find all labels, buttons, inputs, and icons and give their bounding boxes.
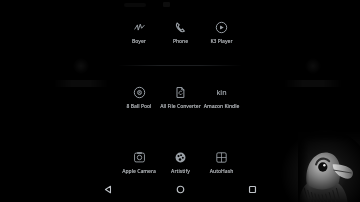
button[interactable]: Phone: [160, 19, 201, 47]
staticText: kindle: [215, 88, 228, 98]
button[interactable]: All File Converter: [160, 84, 201, 112]
button[interactable]: Boyer: [118, 19, 160, 47]
staticText: Phone: [160, 38, 201, 45]
button[interactable]: Back: [85, 176, 131, 202]
button[interactable]: kindle: [201, 84, 242, 112]
staticText: 8 Ball Pool: [118, 103, 160, 110]
staticText: Boyer: [118, 38, 160, 45]
staticText: Artistify: [160, 168, 201, 175]
button[interactable]: K3 Player: [201, 19, 242, 47]
button[interactable]: AutoHash: [201, 149, 242, 177]
staticText: K3 Player: [201, 38, 242, 45]
button[interactable]: Home: [157, 176, 203, 202]
button[interactable]: Artistify: [160, 149, 201, 177]
button[interactable]: 8 Ball Pool: [118, 84, 160, 112]
staticText: Amazon Kindle: [201, 103, 242, 110]
button[interactable]: Recent apps: [229, 176, 275, 202]
staticText: Apple Camera: [118, 168, 160, 175]
staticText: AutoHash: [201, 168, 242, 175]
staticText: All File Converter: [160, 103, 201, 110]
button[interactable]: Apple Camera: [118, 149, 160, 177]
